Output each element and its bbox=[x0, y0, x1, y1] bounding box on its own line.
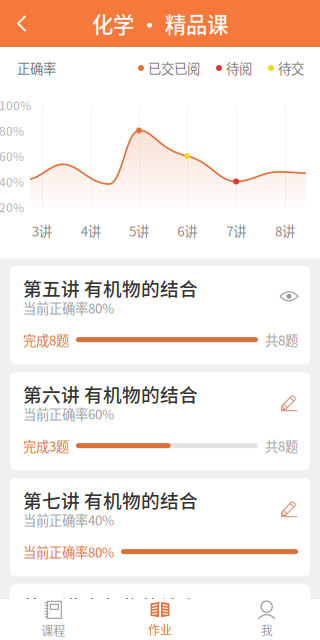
staticText: 完成8题 bbox=[23, 330, 69, 349]
staticText: 化学 · 精品课 bbox=[92, 8, 228, 39]
button[interactable]: 第六讲 有机物的结合 bbox=[10, 372, 310, 470]
staticText: 5讲 bbox=[129, 221, 149, 240]
button[interactable]: 第八讲 有机物的结合 bbox=[10, 584, 310, 640]
staticText: 第六讲 有机物的结合 bbox=[23, 380, 198, 407]
staticText: 当前正确率80% bbox=[23, 298, 114, 317]
staticText: 作业 bbox=[148, 621, 172, 638]
staticText: 第七讲 有机物的结合 bbox=[23, 486, 198, 513]
staticText: 共8题 bbox=[265, 436, 298, 455]
staticText: 课程 bbox=[41, 622, 65, 639]
staticText: 当前正确率40% bbox=[23, 616, 114, 635]
staticText: 当前正确率80% bbox=[23, 542, 114, 561]
button[interactable]: 第五讲 有机物的结合 bbox=[10, 266, 310, 364]
staticText: 6讲 bbox=[177, 221, 197, 240]
staticText: 待阅 bbox=[226, 58, 252, 78]
staticText: 完成3题 bbox=[23, 436, 69, 455]
staticText: 待交 bbox=[278, 58, 304, 78]
staticText: 40% bbox=[0, 173, 24, 190]
staticText: 3讲 bbox=[32, 221, 52, 240]
button[interactable]: Back bbox=[0, 1, 44, 45]
staticText: 已交已阅 bbox=[148, 58, 200, 78]
staticText: 8讲 bbox=[275, 221, 295, 240]
button[interactable]: 作业 bbox=[107, 599, 213, 640]
staticText: 共8题 bbox=[265, 330, 298, 349]
staticText: 第五讲 有机物的结合 bbox=[23, 274, 198, 301]
button[interactable]: 第七讲 有机物的结合 bbox=[10, 478, 310, 576]
staticText: 100% bbox=[0, 96, 31, 114]
staticText: 正确率 bbox=[17, 58, 56, 78]
staticText: 我 bbox=[261, 621, 273, 639]
staticText: 80% bbox=[0, 122, 24, 139]
staticText: 20% bbox=[0, 198, 24, 216]
button[interactable]: 我 bbox=[213, 599, 320, 640]
staticText: 7讲 bbox=[226, 221, 246, 240]
staticText: 第八讲 有机物的结合 bbox=[23, 592, 198, 619]
staticText: 4讲 bbox=[81, 221, 101, 240]
staticText: 当前正确率40% bbox=[23, 510, 114, 529]
staticText: 当前正确率60% bbox=[23, 404, 114, 423]
staticText: 60% bbox=[0, 147, 24, 165]
button[interactable]: 课程 bbox=[0, 599, 107, 640]
